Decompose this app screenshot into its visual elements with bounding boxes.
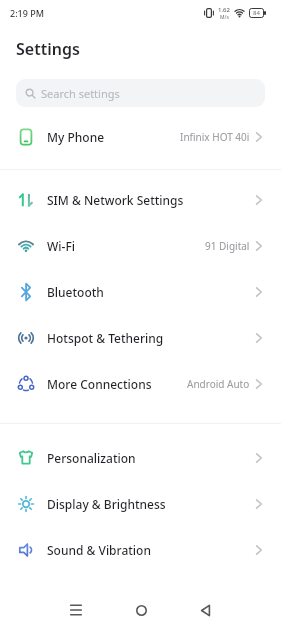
staticText: 84 bbox=[253, 9, 260, 17]
button[interactable] bbox=[193, 598, 217, 622]
staticText: My Phone bbox=[47, 129, 105, 145]
staticText: Infinix HOT 40i bbox=[180, 130, 250, 144]
staticText: 91 Digital bbox=[205, 239, 250, 253]
button[interactable]: Search settings bbox=[16, 79, 265, 107]
staticText: Android Auto bbox=[187, 377, 250, 391]
button[interactable]: SIM & Network Settings bbox=[0, 177, 281, 223]
button[interactable]: Sound & Vibration bbox=[0, 527, 281, 573]
staticText: More Connections bbox=[47, 376, 152, 392]
button[interactable]: Personalization bbox=[0, 435, 281, 481]
button[interactable]: Wi-Fi bbox=[0, 223, 281, 269]
button[interactable]: Hotspot & Tethering bbox=[0, 315, 281, 361]
button[interactable] bbox=[64, 598, 88, 622]
button[interactable]: More Connections bbox=[0, 361, 281, 407]
button[interactable]: Bluetooth bbox=[0, 269, 281, 315]
button[interactable]: Display & Brightness bbox=[0, 481, 281, 527]
staticText: Personalization bbox=[47, 450, 136, 466]
staticText: Bluetooth bbox=[47, 284, 104, 300]
staticText: Settings bbox=[16, 38, 80, 60]
staticText: 2:19 PM bbox=[10, 7, 44, 19]
staticText: Hotspot & Tethering bbox=[47, 330, 164, 346]
staticText: Display & Brightness bbox=[47, 496, 166, 512]
staticText: Search settings bbox=[41, 86, 120, 101]
staticText: Sound & Vibration bbox=[47, 542, 151, 558]
staticText: Wi-Fi bbox=[47, 238, 75, 254]
staticText: M/s bbox=[220, 14, 229, 21]
staticText: SIM & Network Settings bbox=[47, 192, 184, 208]
button[interactable]: My Phone bbox=[0, 114, 281, 160]
staticText: 1.62 bbox=[218, 6, 230, 14]
button[interactable] bbox=[129, 598, 153, 622]
